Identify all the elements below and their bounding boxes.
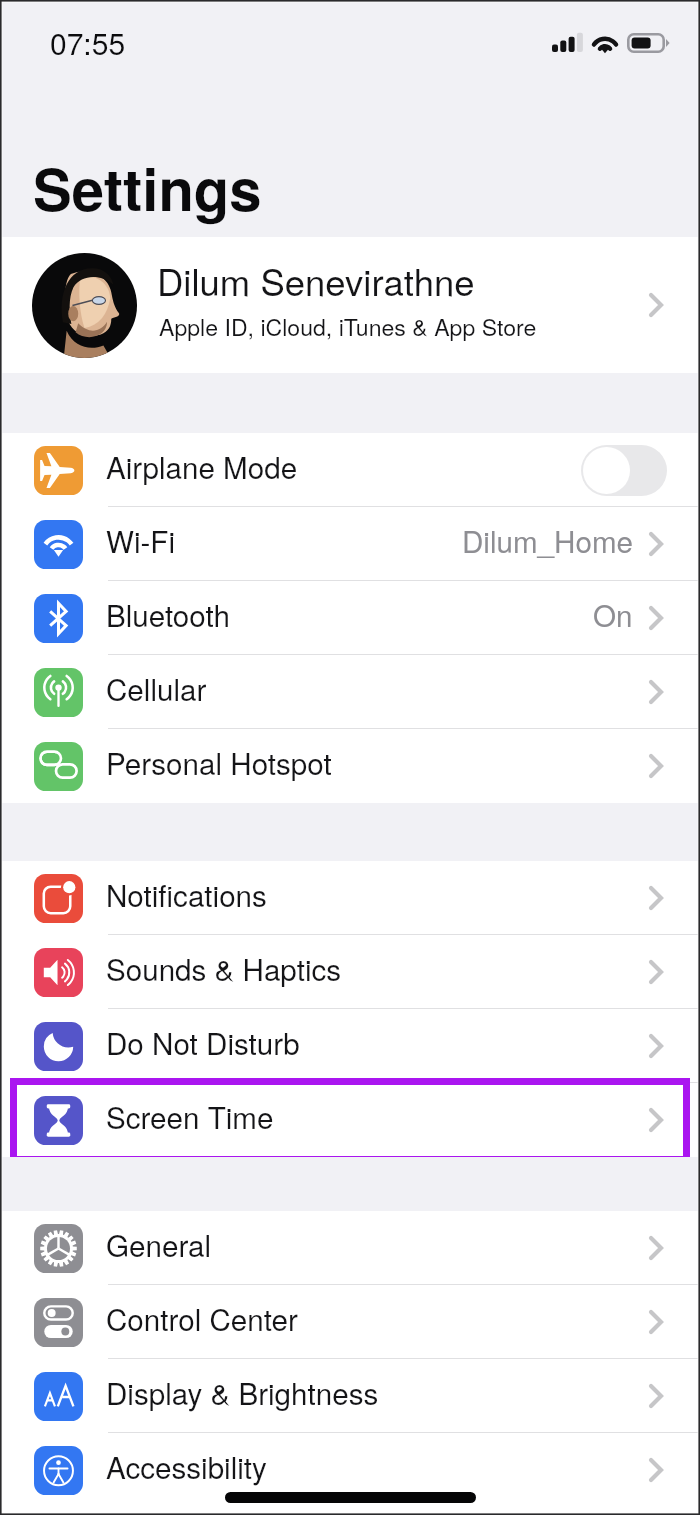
staticText: Dilum Senevirathne [157, 254, 475, 306]
button[interactable]: Bluetooth [0, 581, 700, 655]
staticText: Apple ID, iCloud, iTunes & App Store [159, 309, 537, 342]
button[interactable]: Accessibility [0, 1433, 700, 1507]
staticText: Do Not Disturb [106, 1021, 300, 1063]
button[interactable]: Notifications [0, 861, 700, 935]
button[interactable]: Cellular [0, 655, 700, 729]
button[interactable]: Personal Hotspot [0, 729, 700, 803]
staticText: Sounds & Haptics [106, 947, 342, 989]
button[interactable]: Control Center [0, 1285, 700, 1359]
staticText: Accessibility [106, 1445, 267, 1487]
button[interactable]: Dilum Senevirathne [0, 237, 700, 373]
button[interactable]: Airplane Mode [0, 433, 700, 507]
staticText: On [593, 593, 633, 635]
staticText: 07:55 [50, 21, 126, 64]
staticText: General [106, 1223, 212, 1265]
button[interactable]: Do Not Disturb [0, 1009, 700, 1083]
staticText: Dilum_Home [462, 519, 633, 561]
staticText: Notifications [106, 873, 267, 915]
button[interactable]: Screen Time [0, 1083, 700, 1157]
button[interactable]: General [0, 1211, 700, 1285]
staticText: Bluetooth [106, 593, 230, 635]
staticText: Airplane Mode [106, 445, 298, 487]
staticText: Control Center [106, 1297, 298, 1339]
staticText: Screen Time [106, 1095, 274, 1137]
staticText: Settings [33, 146, 262, 229]
staticText: Personal Hotspot [106, 741, 332, 783]
button[interactable]: Airplane Mode toggle [581, 445, 667, 496]
button[interactable]: Sounds & Haptics [0, 935, 700, 1009]
staticText: Wi-Fi [106, 519, 176, 561]
button[interactable]: Display & Brightness [0, 1359, 700, 1433]
staticText: Cellular [106, 667, 207, 709]
staticText: Display & Brightness [106, 1371, 379, 1413]
button[interactable]: Wi-Fi [0, 507, 700, 581]
